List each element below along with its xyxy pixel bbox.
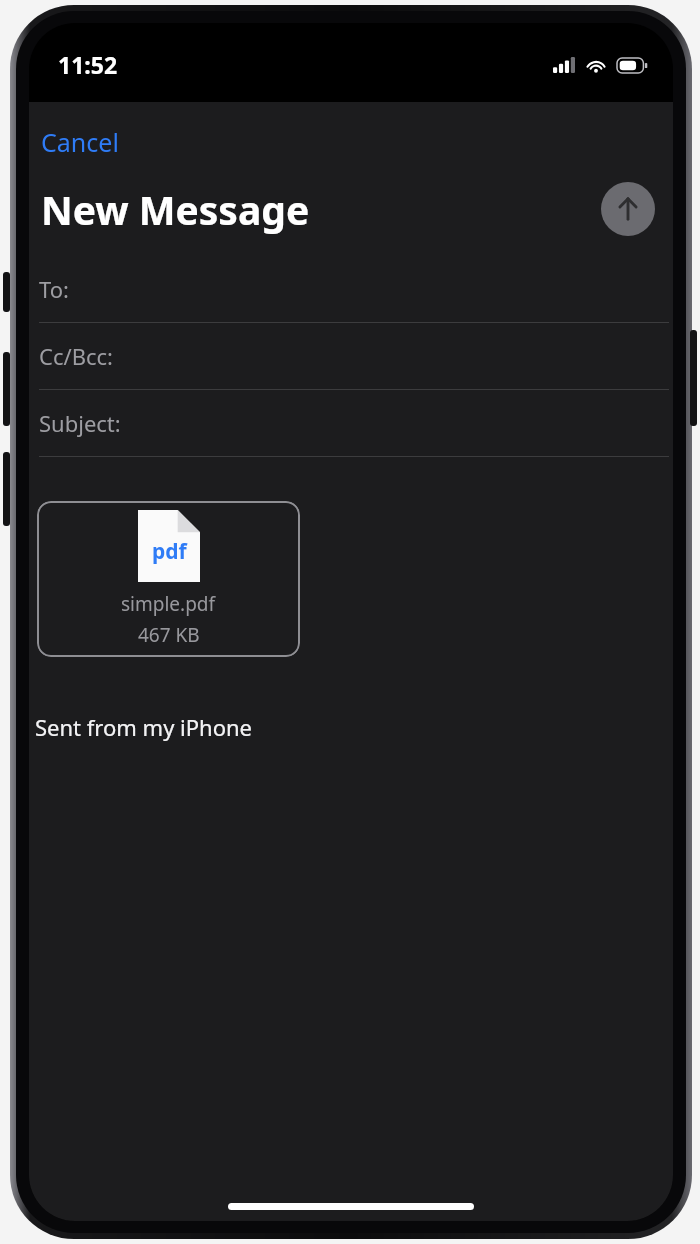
button[interactable]: To: (29, 256, 673, 323)
staticText: simple.pdf (121, 591, 216, 617)
staticText: New Message (41, 183, 601, 236)
staticText: pdf (152, 537, 187, 566)
staticText: Sent from my iPhone (35, 712, 252, 742)
staticText: Cc/Bcc: (39, 341, 113, 371)
staticText: Cancel (41, 125, 119, 159)
button[interactable]: pdf (37, 501, 300, 657)
staticText: 467 KB (138, 622, 200, 648)
button[interactable]: Send (601, 182, 655, 236)
staticText: To: (39, 274, 69, 304)
staticText: Subject: (39, 408, 121, 438)
button[interactable]: Subject: (29, 390, 673, 457)
button[interactable]: Cancel (35, 120, 125, 164)
button[interactable]: Cc/Bcc: (29, 323, 673, 390)
staticText: 11:52 (58, 49, 118, 80)
